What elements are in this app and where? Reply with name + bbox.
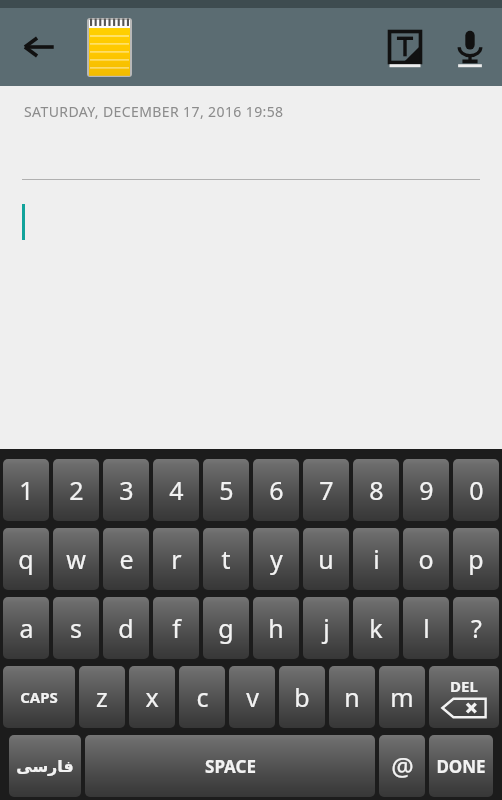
staticText: y [270,542,283,576]
button[interactable]: r [153,528,199,590]
button[interactable]: e [103,528,149,590]
staticText: j [323,611,330,645]
button[interactable]: l [403,597,449,659]
other: Voice input [452,29,488,65]
staticText: ? [471,611,482,645]
staticText: h [268,611,284,645]
button[interactable]: @ [379,735,425,797]
button[interactable]: Notepad [78,8,140,86]
button[interactable]: 3 [103,459,149,521]
staticText: a [19,611,34,645]
button[interactable]: w [53,528,99,590]
staticText: p [468,542,484,576]
button[interactable]: Voice input [438,8,502,86]
button[interactable]: Back [0,8,78,86]
button[interactable]: p [453,528,499,590]
staticText: k [369,611,383,645]
button[interactable]: 2 [53,459,99,521]
button[interactable]: c [179,666,225,728]
staticText: 0 [469,473,484,507]
staticText: فارسی [16,757,74,776]
staticText: w [66,542,86,576]
staticText: 5 [219,473,234,507]
button[interactable]: x [129,666,175,728]
button[interactable]: j [303,597,349,659]
other: Text formatting [387,29,423,65]
staticText: i [373,542,380,576]
staticText: e [119,542,134,576]
staticText: 4 [169,473,184,507]
button[interactable]: m [379,666,425,728]
staticText: SATURDAY, DECEMBER 17, 2016 19:58 [24,102,284,121]
button[interactable]: 9 [403,459,449,521]
button[interactable]: b [279,666,325,728]
button[interactable]: a [3,597,49,659]
staticText: r [171,542,182,576]
button[interactable]: o [403,528,449,590]
staticText: 8 [369,473,384,507]
button[interactable]: 4 [153,459,199,521]
staticText: DEL [450,676,478,696]
button[interactable]: 8 [353,459,399,521]
button[interactable]: Text formatting [372,8,438,86]
button[interactable]: d [103,597,149,659]
button[interactable]: y [253,528,299,590]
button[interactable]: h [253,597,299,659]
staticText: v [246,680,259,714]
staticText: x [145,680,159,714]
staticText: f [172,611,181,645]
staticText: z [96,680,108,714]
button[interactable]: 0 [453,459,499,521]
button[interactable]: u [303,528,349,590]
staticText: t [221,542,231,576]
button[interactable]: z [79,666,125,728]
button[interactable]: g [203,597,249,659]
staticText: 1 [19,473,34,507]
button[interactable]: i [353,528,399,590]
button[interactable]: n [329,666,375,728]
staticText: 3 [119,473,134,507]
button[interactable]: k [353,597,399,659]
button[interactable]: f [153,597,199,659]
staticText: s [70,611,82,645]
staticText: b [294,680,310,714]
button[interactable]: t [203,528,249,590]
button[interactable]: SPACE [85,735,375,797]
button[interactable]: s [53,597,99,659]
staticText: 7 [319,473,334,507]
button[interactable]: CAPS [3,666,75,728]
staticText: d [118,611,134,645]
button[interactable]: Delete [429,666,499,728]
staticText: q [18,542,34,576]
staticText: 2 [69,473,84,507]
staticText: o [418,542,434,576]
staticText: 9 [419,473,434,507]
staticText: l [423,611,430,645]
staticText: DONE [436,755,486,778]
button[interactable]: 7 [303,459,349,521]
staticText: n [344,680,360,714]
staticText: u [318,542,334,576]
button[interactable]: ? [453,597,499,659]
button[interactable]: DONE [429,735,493,797]
staticText: SPACE [205,755,256,778]
button[interactable] [0,204,502,449]
button[interactable]: 1 [3,459,49,521]
button[interactable]: 5 [203,459,249,521]
button[interactable]: v [229,666,275,728]
button[interactable]: q [3,528,49,590]
staticText: g [218,611,234,645]
button[interactable]: فارسی [9,735,81,797]
staticText: m [390,680,414,714]
staticText: 6 [269,473,284,507]
staticText: CAPS [20,687,58,707]
staticText: c [196,680,209,714]
staticText: @ [391,749,414,783]
button[interactable]: 6 [253,459,299,521]
